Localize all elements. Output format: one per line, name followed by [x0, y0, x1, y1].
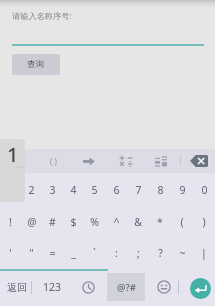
- button[interactable]: ': [0, 238, 21, 268]
- button[interactable]: %: [84, 206, 105, 238]
- button[interactable]: !: [0, 206, 21, 238]
- button[interactable]: 1: [0, 173, 21, 206]
- staticText: 7: [135, 183, 142, 197]
- staticText: ): [202, 215, 206, 229]
- staticText: @?#: [117, 281, 136, 294]
- staticText: 2: [28, 183, 35, 197]
- button[interactable]: 0: [193, 173, 215, 206]
- staticText: 123: [43, 280, 62, 294]
- staticText: 0: [201, 183, 208, 197]
- staticText: 8: [157, 183, 164, 197]
- button[interactable]: 2: [21, 173, 42, 206]
- button[interactable]: ): [193, 206, 215, 238]
- button[interactable]: Clipboard: [145, 149, 177, 173]
- button[interactable]: &: [127, 206, 149, 238]
- staticText: `: [93, 246, 96, 260]
- staticText: #: [49, 215, 56, 229]
- staticText: 5: [91, 183, 98, 197]
- button[interactable]: @?#: [107, 273, 145, 301]
- staticText: ": [29, 246, 34, 260]
- button[interactable]: ;: [127, 238, 149, 268]
- button[interactable]: ?: [149, 238, 171, 268]
- button[interactable]: Enter: [190, 278, 211, 299]
- button[interactable]: `: [84, 238, 105, 268]
- staticText: ;: [137, 246, 140, 260]
- button[interactable]: 7: [127, 173, 149, 206]
- button[interactable]: 3: [42, 173, 63, 206]
- staticText: ': [9, 246, 12, 260]
- staticText: :: [115, 246, 118, 260]
- staticText: =: [49, 246, 56, 260]
- button[interactable]: $: [63, 206, 84, 238]
- button[interactable]: Backspace: [183, 149, 215, 173]
- staticText: 1: [7, 141, 19, 168]
- button[interactable]: Recent: [71, 268, 105, 306]
- button[interactable]: #: [42, 206, 63, 238]
- button[interactable]: ^: [105, 206, 127, 238]
- staticText: 4: [70, 183, 77, 197]
- button[interactable]: 6: [105, 173, 127, 206]
- staticText: 查询: [27, 59, 45, 70]
- staticText: ( ): [50, 156, 57, 167]
- staticText: _: [71, 246, 76, 260]
- button[interactable]: 9: [171, 173, 193, 206]
- staticText: ?: [158, 246, 163, 260]
- button[interactable]: 5: [84, 173, 105, 206]
- staticText: 返回: [7, 281, 27, 294]
- button[interactable]: 返回: [0, 268, 34, 306]
- button[interactable]: 查询: [12, 54, 60, 75]
- staticText: 请输入名称序号:: [12, 10, 72, 21]
- button[interactable]: Emoji: [147, 268, 181, 306]
- button[interactable]: ( ): [37, 149, 69, 173]
- staticText: ^: [113, 215, 120, 229]
- button[interactable]: Math symbols: [109, 149, 141, 173]
- button[interactable]: Tab: [73, 149, 105, 173]
- button[interactable]: =: [42, 238, 63, 268]
- staticText: 3: [49, 183, 56, 197]
- staticText: @: [27, 215, 37, 229]
- button[interactable]: :: [105, 238, 127, 268]
- staticText: ~: [179, 246, 186, 260]
- staticText: *: [157, 215, 163, 229]
- button[interactable]: 4: [63, 173, 84, 206]
- button[interactable]: (: [171, 206, 193, 238]
- staticText: %: [90, 215, 99, 229]
- staticText: (: [180, 215, 184, 229]
- button[interactable]: 8: [149, 173, 171, 206]
- staticText: |: [201, 246, 207, 260]
- staticText: 9: [179, 183, 186, 197]
- staticText: $: [70, 215, 77, 229]
- button[interactable]: @: [21, 206, 42, 238]
- staticText: !: [9, 215, 12, 229]
- button[interactable]: |: [193, 238, 215, 268]
- button[interactable]: 123: [35, 268, 69, 306]
- staticText: &: [134, 215, 142, 229]
- button[interactable]: _: [63, 238, 84, 268]
- button[interactable]: *: [149, 206, 171, 238]
- button[interactable]: ~: [171, 238, 193, 268]
- staticText: 6: [113, 183, 120, 197]
- button[interactable]: ": [21, 238, 42, 268]
